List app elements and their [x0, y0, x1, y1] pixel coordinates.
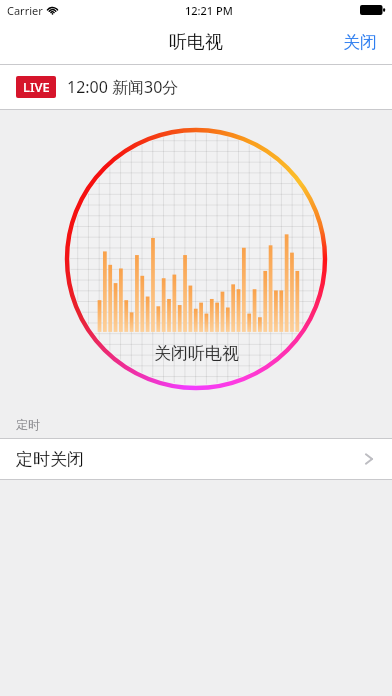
staticText: 定时 — [16, 417, 40, 432]
staticText: 关闭 — [343, 32, 377, 53]
staticText: 12:00 新闻30分 — [67, 76, 179, 98]
staticText: 关闭听电视 — [154, 343, 239, 364]
staticText: 定时关闭 — [16, 449, 84, 470]
button[interactable]: 关闭 — [328, 21, 392, 64]
button[interactable]: 定时关闭 — [0, 439, 392, 479]
staticText: Carrier — [7, 3, 43, 18]
staticText: 12:21 PM — [185, 3, 233, 18]
button[interactable]: LIVE — [0, 65, 392, 109]
button[interactable]: 关闭听电视 — [62, 125, 330, 393]
staticText: LIVE — [23, 78, 50, 96]
staticText: 听电视 — [169, 31, 223, 54]
